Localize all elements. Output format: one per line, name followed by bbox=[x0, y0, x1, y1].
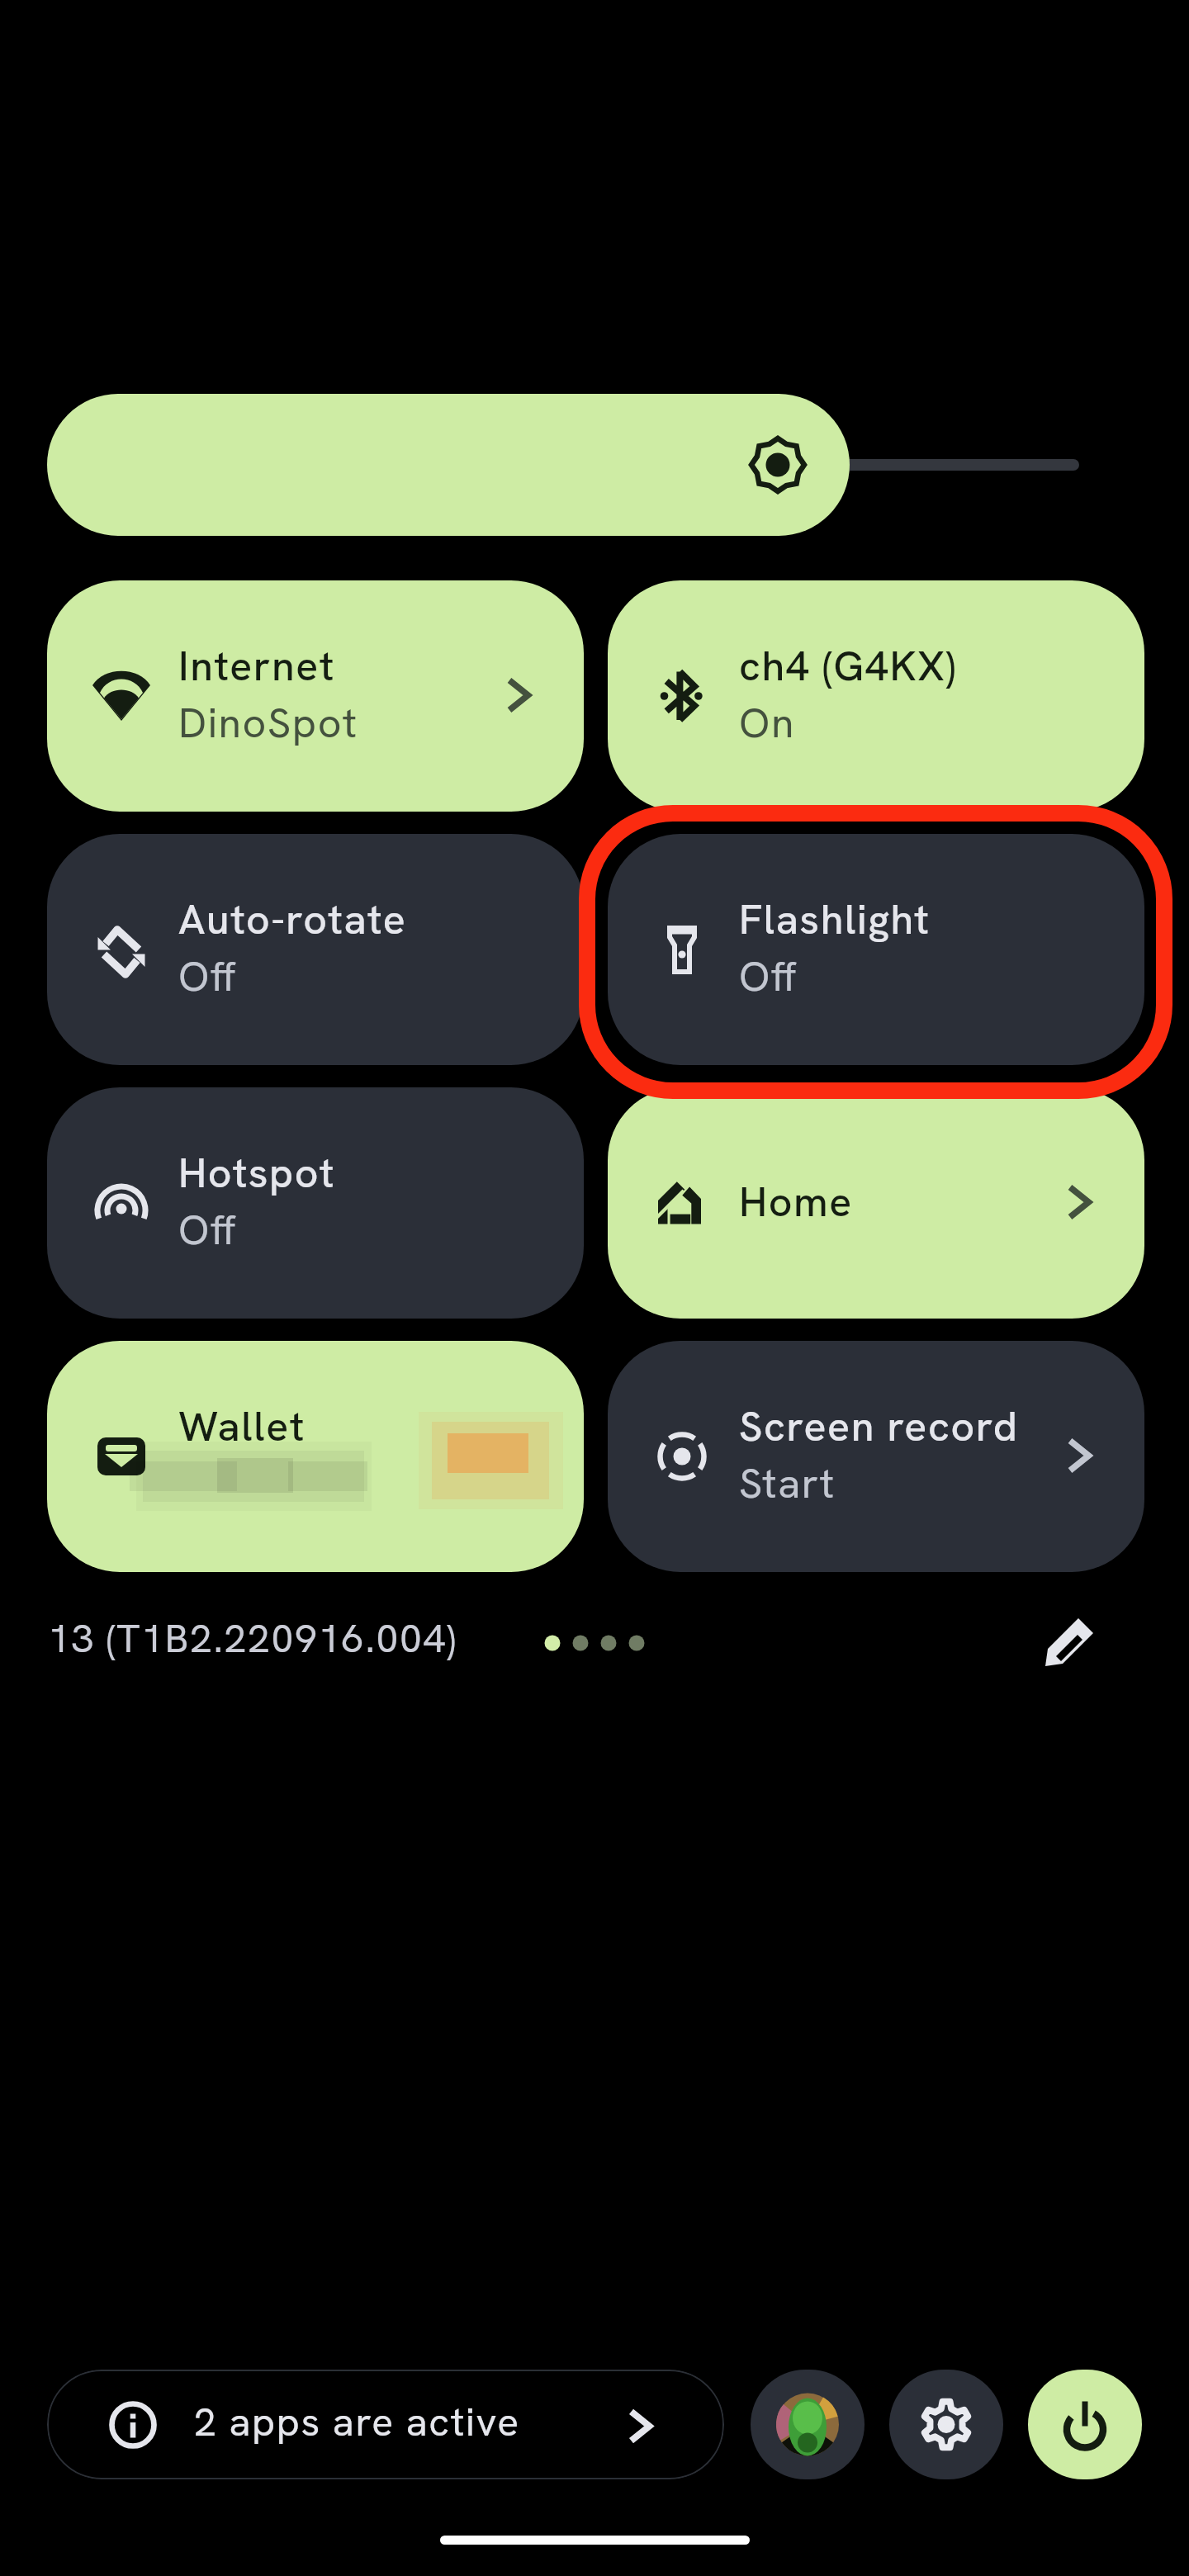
button[interactable]: Home bbox=[608, 1087, 1144, 1319]
button[interactable]: ch4 (G4KX) bbox=[608, 580, 1144, 812]
staticText: Off bbox=[178, 1203, 238, 1257]
button[interactable]: Screen record bbox=[608, 1341, 1144, 1572]
staticText: Start bbox=[739, 1456, 836, 1510]
staticText: 13 (T1B2.220916.004) bbox=[48, 1612, 457, 1664]
button[interactable] bbox=[47, 394, 850, 536]
staticText: Auto-rotate bbox=[178, 893, 533, 946]
staticText: DinoSpot bbox=[178, 696, 358, 750]
staticText: Wallet bbox=[178, 1399, 533, 1453]
button[interactable]: Settings bbox=[889, 2370, 1003, 2479]
button[interactable]: Internet bbox=[47, 580, 584, 812]
staticText: Off bbox=[739, 949, 798, 1003]
staticText: Home bbox=[739, 1175, 853, 1229]
button[interactable]: Hotspot bbox=[47, 1087, 584, 1319]
button[interactable]: 2 apps are active bbox=[47, 2370, 724, 2479]
button[interactable]: Flashlight bbox=[608, 834, 1144, 1065]
staticText: Hotspot bbox=[178, 1146, 533, 1200]
staticText: Screen record bbox=[739, 1399, 1094, 1453]
button[interactable]: Edit tiles bbox=[1026, 1602, 1109, 1684]
staticText: 2 apps are active bbox=[194, 2396, 520, 2448]
button[interactable]: Wallet bbox=[47, 1341, 584, 1572]
button[interactable]: Auto-rotate bbox=[47, 834, 584, 1065]
staticText: ch4 (G4KX) bbox=[739, 639, 1094, 693]
button[interactable]: User avatar bbox=[751, 2370, 865, 2479]
button[interactable]: Power bbox=[1028, 2370, 1142, 2479]
staticText: Off bbox=[178, 949, 238, 1003]
staticText: Flashlight bbox=[739, 893, 1094, 946]
staticText: On bbox=[739, 696, 795, 750]
staticText: Internet bbox=[178, 639, 533, 693]
